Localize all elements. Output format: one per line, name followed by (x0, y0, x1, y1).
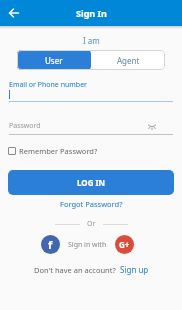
staticText: Forgot Password? (60, 199, 123, 209)
button[interactable] (6, 5, 22, 21)
button[interactable]: Forgot Password? (60, 199, 123, 209)
button[interactable]: f (41, 235, 60, 254)
staticText: Sign up (120, 264, 149, 275)
button[interactable]: LOG IN (8, 170, 174, 195)
staticText: Email or Phone number (9, 80, 87, 90)
staticText: User (45, 55, 63, 66)
staticText: Password (9, 121, 148, 131)
button[interactable]: Sign up (120, 264, 149, 275)
staticText: Sign in with (68, 240, 107, 250)
button[interactable]: Agent (91, 50, 165, 70)
staticText: Agent (117, 55, 140, 66)
staticText: f (48, 237, 53, 252)
staticText: Or (87, 219, 96, 229)
staticText: I am (83, 35, 100, 46)
button[interactable]: User (17, 50, 91, 70)
button[interactable]: Remember Password? (8, 146, 98, 156)
staticText: Remember Password? (19, 146, 98, 156)
staticText: LOG IN (77, 177, 106, 188)
staticText: Don't have an account? (34, 265, 116, 275)
staticText: G+ (119, 239, 130, 250)
staticText: Sign In (76, 7, 107, 19)
button[interactable]: G+ (115, 235, 134, 254)
